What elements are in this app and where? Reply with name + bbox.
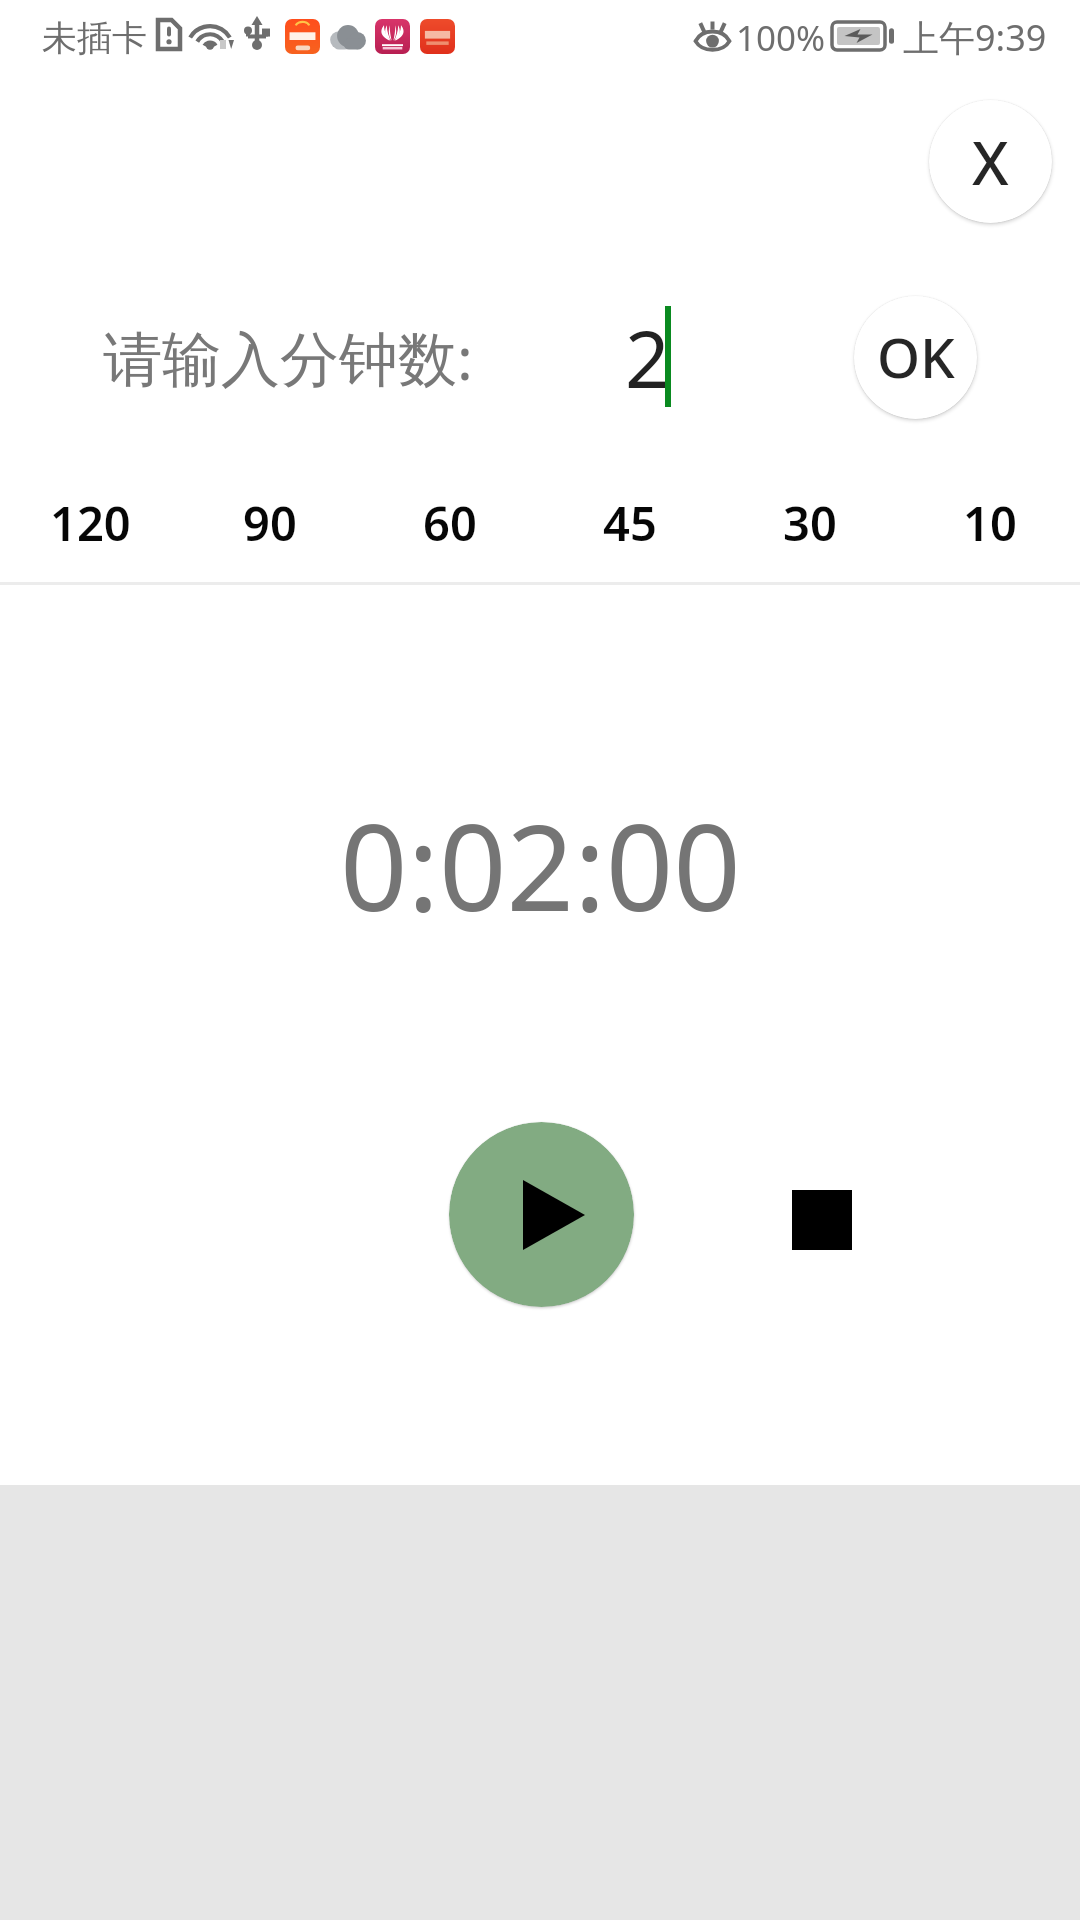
staticText: 45: [603, 491, 657, 555]
staticText: OK: [877, 319, 955, 394]
button[interactable]: 90: [180, 478, 360, 568]
staticText: 未插卡: [42, 16, 147, 60]
staticText: 上午9:39: [903, 13, 1047, 62]
staticText: 100%: [736, 14, 826, 62]
button[interactable]: 45: [540, 478, 720, 568]
staticText: 90: [243, 491, 297, 555]
staticText: 120: [50, 491, 131, 555]
staticText: 10: [963, 491, 1017, 555]
button[interactable]: Start timer: [449, 1122, 634, 1307]
staticText: X: [972, 121, 1009, 203]
button[interactable]: 30: [720, 478, 900, 568]
button[interactable]: 120: [0, 478, 180, 568]
staticText: 2: [625, 305, 670, 411]
staticText: 60: [423, 491, 477, 555]
staticText: 0:02:00: [340, 785, 741, 946]
button[interactable]: Close: [929, 100, 1052, 223]
button[interactable]: 60: [360, 478, 540, 568]
staticText: 请输入分钟数:: [103, 317, 473, 398]
button[interactable]: 10: [900, 478, 1080, 568]
button[interactable]: OK: [854, 296, 977, 419]
staticText: 30: [783, 491, 837, 555]
